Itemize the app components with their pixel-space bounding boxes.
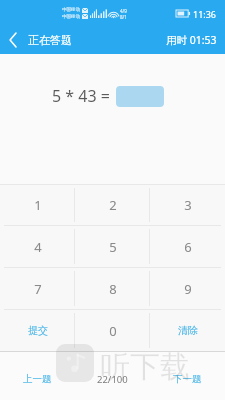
button[interactable]: 上一题 xyxy=(0,366,75,392)
staticText: 9 xyxy=(184,280,192,298)
button[interactable]: 提交 xyxy=(0,310,75,351)
button[interactable]: 2 xyxy=(75,185,150,225)
staticText: 5 * 43 = xyxy=(52,85,110,107)
button[interactable]: 清除 xyxy=(150,310,225,351)
staticText: 4 xyxy=(34,238,42,256)
button[interactable]: 4 xyxy=(0,226,75,267)
staticText: 中国移动 xyxy=(62,7,80,13)
staticText: 22/100 xyxy=(97,373,128,386)
staticText: 听下载 xyxy=(100,348,190,386)
button[interactable]: 6 xyxy=(150,226,225,267)
staticText: 用时 01:53 xyxy=(166,33,217,47)
button[interactable]: 3 xyxy=(150,185,225,225)
staticText: 8 xyxy=(109,280,117,298)
button[interactable]: 1 xyxy=(0,185,75,225)
staticText: 下一题 xyxy=(173,373,202,385)
button[interactable]: Answer input xyxy=(116,86,164,107)
button[interactable]: 7 xyxy=(0,268,75,309)
staticText: 8/1 xyxy=(120,14,127,20)
staticText: 正在答题 xyxy=(28,33,72,47)
staticText: 5 xyxy=(109,238,117,256)
staticText: 上一题 xyxy=(23,373,52,385)
staticText: 3 xyxy=(184,196,192,214)
staticText: 7 xyxy=(34,280,42,298)
button[interactable]: 8 xyxy=(75,268,150,309)
staticText: 4/9 xyxy=(120,8,127,14)
staticText: 2 xyxy=(109,196,117,214)
staticText: 清除 xyxy=(178,324,198,337)
button[interactable]: 下一题 xyxy=(150,366,225,392)
staticText: 中国移动 xyxy=(62,14,80,20)
staticText: 提交 xyxy=(28,324,48,337)
staticText: 1 xyxy=(34,196,42,214)
button[interactable]: 9 xyxy=(150,268,225,309)
staticText: 6 xyxy=(184,238,192,256)
button[interactable]: 0 xyxy=(75,310,150,351)
staticText: 11:36 xyxy=(193,8,217,20)
staticText: 0 xyxy=(109,322,117,340)
button[interactable]: 5 xyxy=(75,226,150,267)
button[interactable]: Back xyxy=(0,26,26,54)
